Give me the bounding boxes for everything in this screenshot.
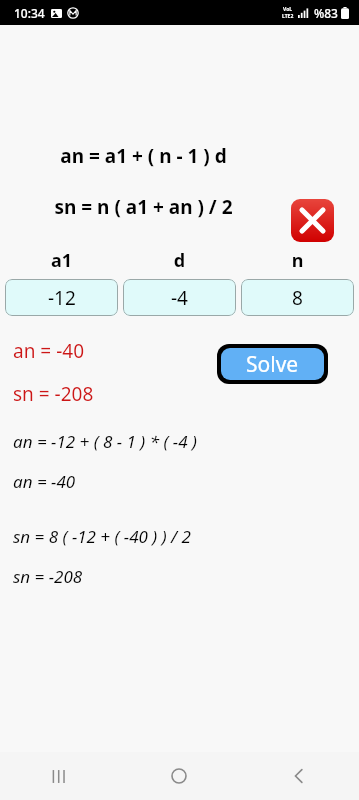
staticText: d <box>123 248 236 273</box>
staticText: an = -12 + ( 8 - 1 ) * ( -4 ) <box>13 430 197 453</box>
button[interactable]: -4 <box>123 279 236 316</box>
staticText: -12 <box>48 285 76 311</box>
staticText: sn = 8 ( -12 + ( -40 ) ) / 2 <box>13 525 191 548</box>
staticText: an = -40 <box>13 338 85 364</box>
staticText: sn = n ( a1 + an ) / 2 <box>0 194 287 220</box>
staticText: 8 <box>292 285 303 311</box>
button[interactable]: -12 <box>5 279 118 316</box>
staticText: -4 <box>171 285 188 311</box>
button[interactable]: Recents <box>0 752 119 800</box>
staticText: sn = -208 <box>13 381 94 407</box>
staticText: n <box>241 248 354 273</box>
staticText: %83 <box>314 5 338 21</box>
staticText: 10:34 <box>14 5 45 21</box>
button[interactable]: Clear <box>291 199 334 242</box>
staticText: LTE2 <box>282 13 294 20</box>
button[interactable]: Solve <box>221 348 324 380</box>
staticText: an = a1 + ( n - 1 ) d <box>0 143 287 169</box>
staticText: VoL <box>283 6 293 13</box>
staticText: an = -40 <box>13 470 76 493</box>
staticText: a1 <box>5 248 118 273</box>
button[interactable]: Home <box>119 752 239 800</box>
button[interactable]: Back <box>239 752 359 800</box>
staticText: sn = -208 <box>13 565 83 588</box>
button[interactable]: 8 <box>241 279 354 316</box>
staticText: Solve <box>246 350 299 379</box>
